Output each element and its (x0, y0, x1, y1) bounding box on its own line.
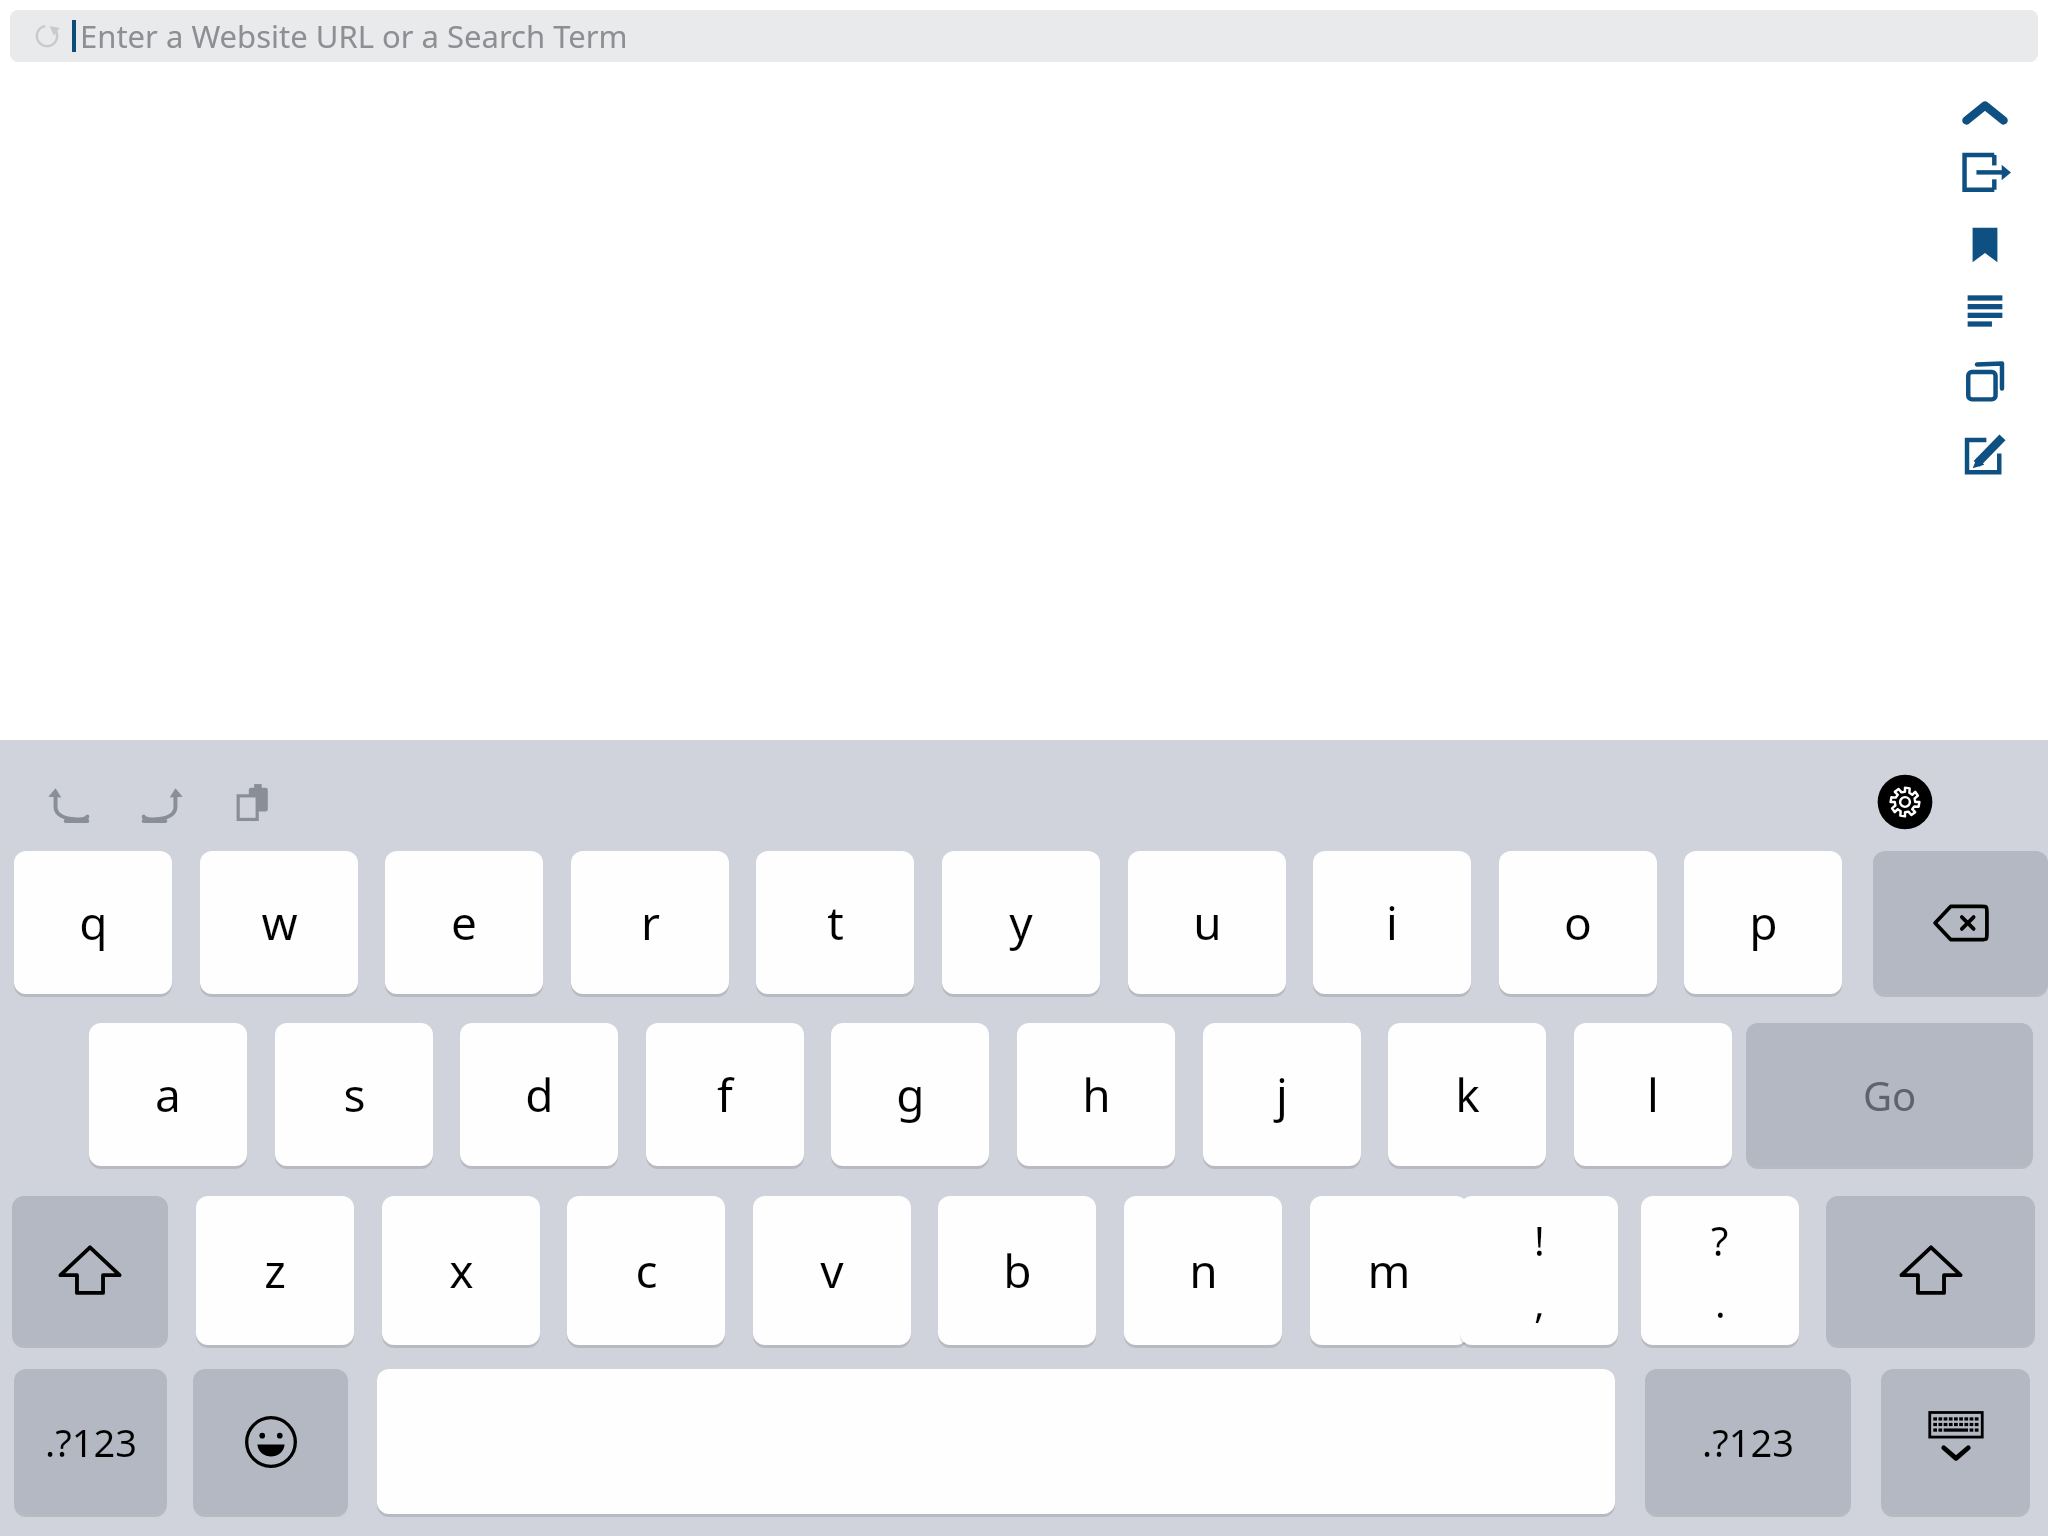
button[interactable]: i (1313, 851, 1471, 994)
staticText: j (1276, 1063, 1288, 1126)
staticText: h (1082, 1063, 1111, 1126)
button[interactable]: ? . (1641, 1196, 1799, 1345)
staticText: n (1189, 1239, 1218, 1302)
staticText: u (1193, 891, 1222, 954)
button[interactable]: Numbers and symbols (14, 1369, 167, 1514)
button[interactable]: Emoji (193, 1369, 348, 1514)
button[interactable]: Bookmarks (1954, 214, 2016, 276)
staticText: .?123 (1702, 1416, 1794, 1468)
button[interactable]: Paste (215, 764, 291, 840)
button[interactable]: f (646, 1023, 804, 1166)
staticText: e (451, 891, 477, 954)
staticText: ? (1711, 1213, 1729, 1267)
button[interactable]: z (196, 1196, 354, 1345)
button[interactable]: h (1017, 1023, 1175, 1166)
staticText: k (1455, 1063, 1480, 1126)
staticText: a (155, 1063, 181, 1126)
staticText: Enter a Website URL or a Search Term (80, 15, 628, 57)
button[interactable]: g (831, 1023, 989, 1166)
button[interactable]: Backspace (1873, 851, 2048, 994)
button[interactable]: Go (1746, 1023, 2033, 1166)
button[interactable]: x (382, 1196, 540, 1345)
staticText: m (1367, 1239, 1411, 1302)
button[interactable]: v (753, 1196, 911, 1345)
staticText: Go (1863, 1068, 1917, 1122)
staticText: z (264, 1239, 286, 1302)
staticText: v (820, 1239, 844, 1302)
button[interactable]: c (567, 1196, 725, 1345)
button[interactable]: t (756, 851, 914, 994)
staticText: d (525, 1063, 554, 1126)
button[interactable]: o (1499, 851, 1657, 994)
staticText: y (1009, 891, 1033, 954)
button[interactable]: p (1684, 851, 1842, 994)
button[interactable]: a (89, 1023, 247, 1166)
button[interactable]: Undo (32, 764, 108, 840)
button[interactable]: q (14, 851, 172, 994)
button[interactable]: Shift (12, 1196, 168, 1345)
staticText: w (261, 891, 298, 954)
button[interactable]: n (1124, 1196, 1282, 1345)
button[interactable]: Scroll to top (1954, 82, 2016, 144)
staticText: i (1386, 891, 1398, 954)
button[interactable]: m (1310, 1196, 1468, 1345)
button[interactable]: w (200, 851, 358, 994)
button[interactable]: y (942, 851, 1100, 994)
staticText: o (1564, 891, 1592, 954)
button[interactable]: s (275, 1023, 433, 1166)
button[interactable]: ! , (1460, 1196, 1618, 1345)
staticText: ! (1534, 1213, 1545, 1267)
staticText: x (449, 1239, 474, 1302)
button[interactable]: u (1128, 851, 1286, 994)
button[interactable]: Enter a Website URL or a Search Term (10, 10, 2038, 62)
button[interactable]: j (1203, 1023, 1361, 1166)
button[interactable]: Hide keyboard (1881, 1369, 2030, 1514)
staticText: b (1003, 1239, 1032, 1302)
staticText: .?123 (45, 1416, 137, 1468)
button[interactable]: e (385, 851, 543, 994)
button[interactable]: r (571, 851, 729, 994)
button[interactable]: b (938, 1196, 1096, 1345)
staticText: f (717, 1063, 733, 1126)
button[interactable]: Reading list (1954, 280, 2016, 342)
staticText: p (1749, 891, 1778, 954)
button[interactable]: Tabs (1954, 351, 2016, 413)
button[interactable]: Redo (123, 764, 199, 840)
staticText: . (1715, 1275, 1726, 1329)
button[interactable]: l (1574, 1023, 1732, 1166)
staticText: , (1534, 1275, 1545, 1329)
button[interactable]: k (1388, 1023, 1546, 1166)
staticText: l (1647, 1063, 1659, 1126)
staticText: q (79, 891, 108, 954)
button[interactable]: Shift (1826, 1196, 2035, 1345)
button[interactable]: d (460, 1023, 618, 1166)
button[interactable]: New tab (1954, 422, 2016, 484)
staticText: r (641, 891, 660, 954)
staticText: t (827, 891, 844, 954)
button[interactable]: Keyboard settings (1869, 766, 1941, 838)
button[interactable]: Share (1954, 142, 2016, 204)
staticText: g (896, 1063, 925, 1126)
staticText: c (635, 1239, 658, 1302)
button[interactable]: Numbers and symbols (1645, 1369, 1851, 1514)
staticText: s (343, 1063, 366, 1126)
